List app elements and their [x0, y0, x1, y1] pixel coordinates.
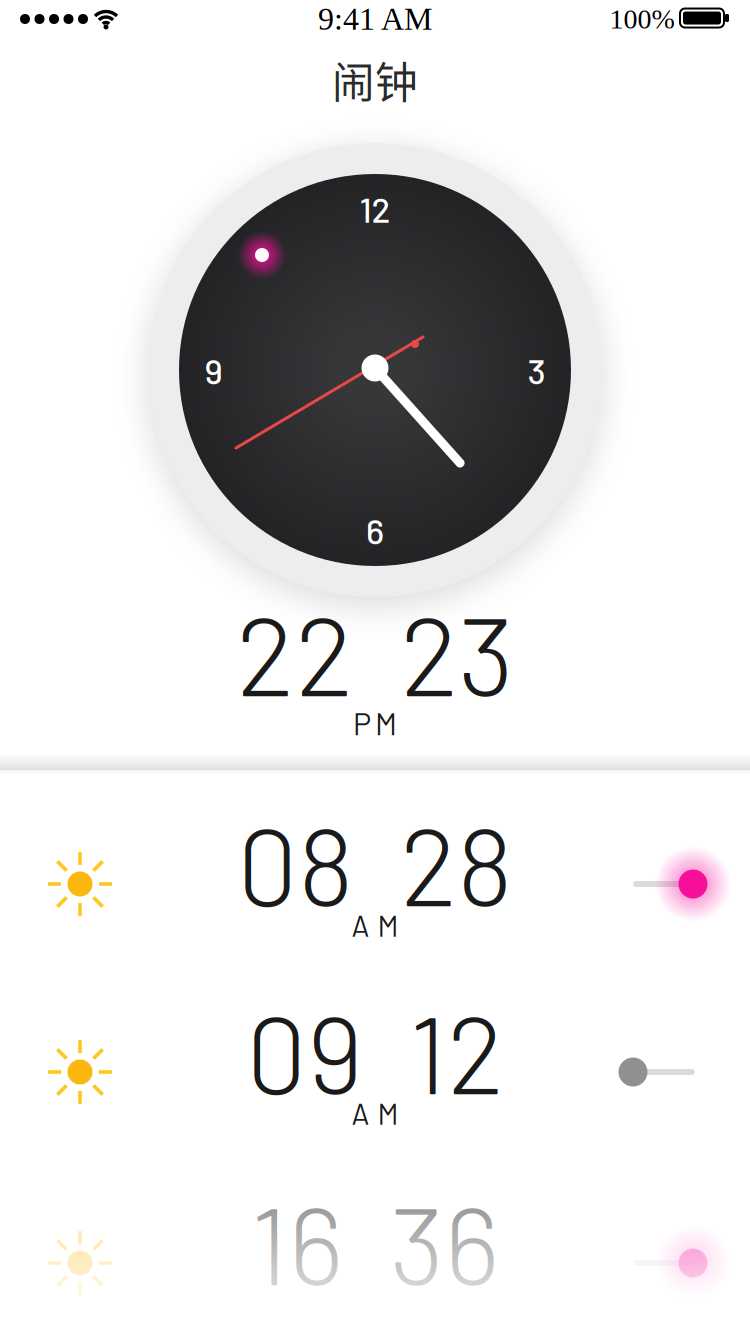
staticText: 12 [409, 986, 504, 1116]
staticText: 09 [246, 986, 363, 1116]
staticText: 9:41 AM [318, 1, 432, 37]
button[interactable]: Edit alarm 16:36 [0, 1166, 750, 1334]
button[interactable]: Edit alarm 08:28 [0, 787, 750, 957]
staticText: 9 [204, 350, 222, 391]
staticText: 3 [527, 350, 545, 391]
staticText: P [353, 705, 371, 741]
staticText: A [351, 907, 369, 943]
staticText: 12 [359, 188, 390, 230]
staticText: M [377, 1095, 398, 1131]
staticText: 28 [400, 798, 513, 928]
staticText: 闹钟 [332, 49, 418, 111]
staticText: 16 [250, 1177, 343, 1307]
button[interactable]: Edit alarm 09:12 [0, 975, 750, 1145]
staticText: 100% [609, 3, 674, 34]
staticText: M [375, 705, 397, 741]
staticText: 6 [366, 510, 384, 551]
staticText: 22 [236, 586, 354, 718]
staticText: 23 [400, 586, 514, 718]
button[interactable]: Turn alarm on [623, 1027, 713, 1117]
staticText: A [351, 1095, 369, 1131]
staticText: 08 [237, 798, 354, 928]
button[interactable]: Turn alarm off [623, 839, 713, 929]
button[interactable]: Turn alarm off [623, 1218, 713, 1308]
staticText: 36 [389, 1177, 499, 1307]
staticText: M [377, 907, 398, 943]
